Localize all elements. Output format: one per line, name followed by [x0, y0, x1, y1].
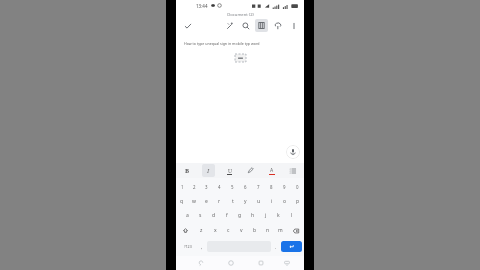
button[interactable]: Format [223, 19, 236, 32]
staticText: 9 [283, 184, 286, 190]
button[interactable]: Text color [265, 164, 278, 177]
button[interactable]: s [194, 208, 207, 223]
button[interactable]: a [181, 208, 194, 223]
button[interactable]: q [176, 194, 188, 208]
button[interactable]: m [274, 223, 287, 238]
staticText: 5 [231, 184, 234, 190]
button[interactable]: e [200, 194, 213, 208]
button[interactable]: p [291, 194, 304, 208]
staticText: a [186, 212, 189, 219]
button[interactable]: Back [195, 257, 207, 269]
button[interactable]: i [265, 194, 278, 208]
button[interactable]: Underline [223, 164, 236, 177]
staticText: y [244, 198, 247, 205]
staticText: p [296, 198, 300, 205]
staticText: 2 [193, 184, 196, 190]
button[interactable]: o [278, 194, 291, 208]
staticText: r [218, 198, 221, 205]
button[interactable]: Undo [271, 19, 284, 32]
button[interactable]: Comma [197, 239, 207, 254]
button[interactable]: b [248, 223, 261, 238]
button[interactable]: g [233, 208, 246, 223]
staticText: c [227, 227, 230, 234]
staticText: s [199, 212, 202, 219]
button[interactable]: h [246, 208, 259, 223]
button[interactable]: 0 [291, 180, 304, 194]
button[interactable]: Recents [255, 257, 267, 269]
button[interactable]: Done [181, 19, 194, 32]
staticText: 1 [181, 184, 184, 190]
staticText: f [226, 212, 228, 219]
staticText: q [180, 198, 184, 205]
staticText: ?123 [184, 244, 192, 249]
staticText: 0 [296, 184, 299, 190]
button[interactable]: Home [225, 257, 237, 269]
staticText: m [278, 227, 283, 234]
button[interactable]: w [188, 194, 200, 208]
button[interactable]: Hide keyboard [281, 257, 293, 269]
staticText: d [212, 212, 216, 219]
button[interactable]: More options [287, 19, 300, 32]
button[interactable]: f [220, 208, 233, 223]
staticText: 13:44 [196, 3, 208, 9]
staticText: v [240, 227, 243, 234]
button[interactable]: n [261, 223, 274, 238]
button[interactable]: j [259, 208, 272, 223]
staticText: 3 [205, 184, 208, 190]
staticText: . [275, 244, 277, 250]
staticText: 8 [270, 184, 273, 190]
button[interactable]: 1 [176, 180, 188, 194]
staticText: A [270, 167, 274, 174]
button[interactable]: d [207, 208, 220, 223]
button[interactable]: Italic [202, 164, 215, 177]
button[interactable]: 9 [278, 180, 291, 194]
button[interactable]: List [286, 164, 299, 177]
staticText: How to type unequal sign in mobile typ w… [184, 41, 298, 46]
button[interactable]: Voice typing [286, 145, 300, 159]
button[interactable]: Enter [281, 241, 302, 252]
button[interactable]: z [194, 223, 208, 238]
staticText: t [232, 198, 234, 205]
button[interactable]: 4 [213, 180, 226, 194]
button[interactable]: Symbols [178, 239, 197, 254]
button[interactable]: Period [271, 239, 281, 254]
button[interactable]: u [252, 194, 265, 208]
staticText: 7 [257, 184, 260, 190]
button[interactable]: r [213, 194, 226, 208]
button[interactable]: t [226, 194, 239, 208]
button[interactable]: y [239, 194, 252, 208]
button[interactable]: c [222, 223, 235, 238]
button[interactable]: Shift [176, 223, 194, 238]
button[interactable]: 8 [265, 180, 278, 194]
staticText: U [228, 167, 232, 174]
staticText: w [192, 198, 196, 205]
button[interactable]: Selected object [235, 54, 246, 62]
staticText: b [253, 227, 257, 234]
staticText: g [238, 212, 242, 219]
button[interactable]: 3 [200, 180, 213, 194]
button[interactable]: l [285, 208, 298, 223]
button[interactable]: x [208, 223, 222, 238]
staticText: B [185, 167, 190, 175]
staticText: l [291, 212, 293, 219]
staticText: 6 [244, 184, 247, 190]
staticText: , [201, 244, 203, 250]
button[interactable]: v [235, 223, 248, 238]
button[interactable]: Backspace [287, 223, 304, 238]
button[interactable]: Highlight [244, 164, 257, 177]
staticText: k [277, 212, 280, 219]
button[interactable]: Bold [181, 164, 194, 177]
staticText: 4 [218, 184, 221, 190]
button[interactable]: Search [239, 19, 252, 32]
staticText: h [251, 212, 255, 219]
button[interactable]: Table [255, 19, 268, 32]
button[interactable]: 2 [188, 180, 200, 194]
button[interactable]: 5 [226, 180, 239, 194]
button[interactable]: 7 [252, 180, 265, 194]
staticText: o [283, 198, 287, 205]
button[interactable]: 6 [239, 180, 252, 194]
staticText: Document (2) [227, 12, 254, 18]
button[interactable]: k [272, 208, 285, 223]
staticText: x [214, 227, 217, 234]
